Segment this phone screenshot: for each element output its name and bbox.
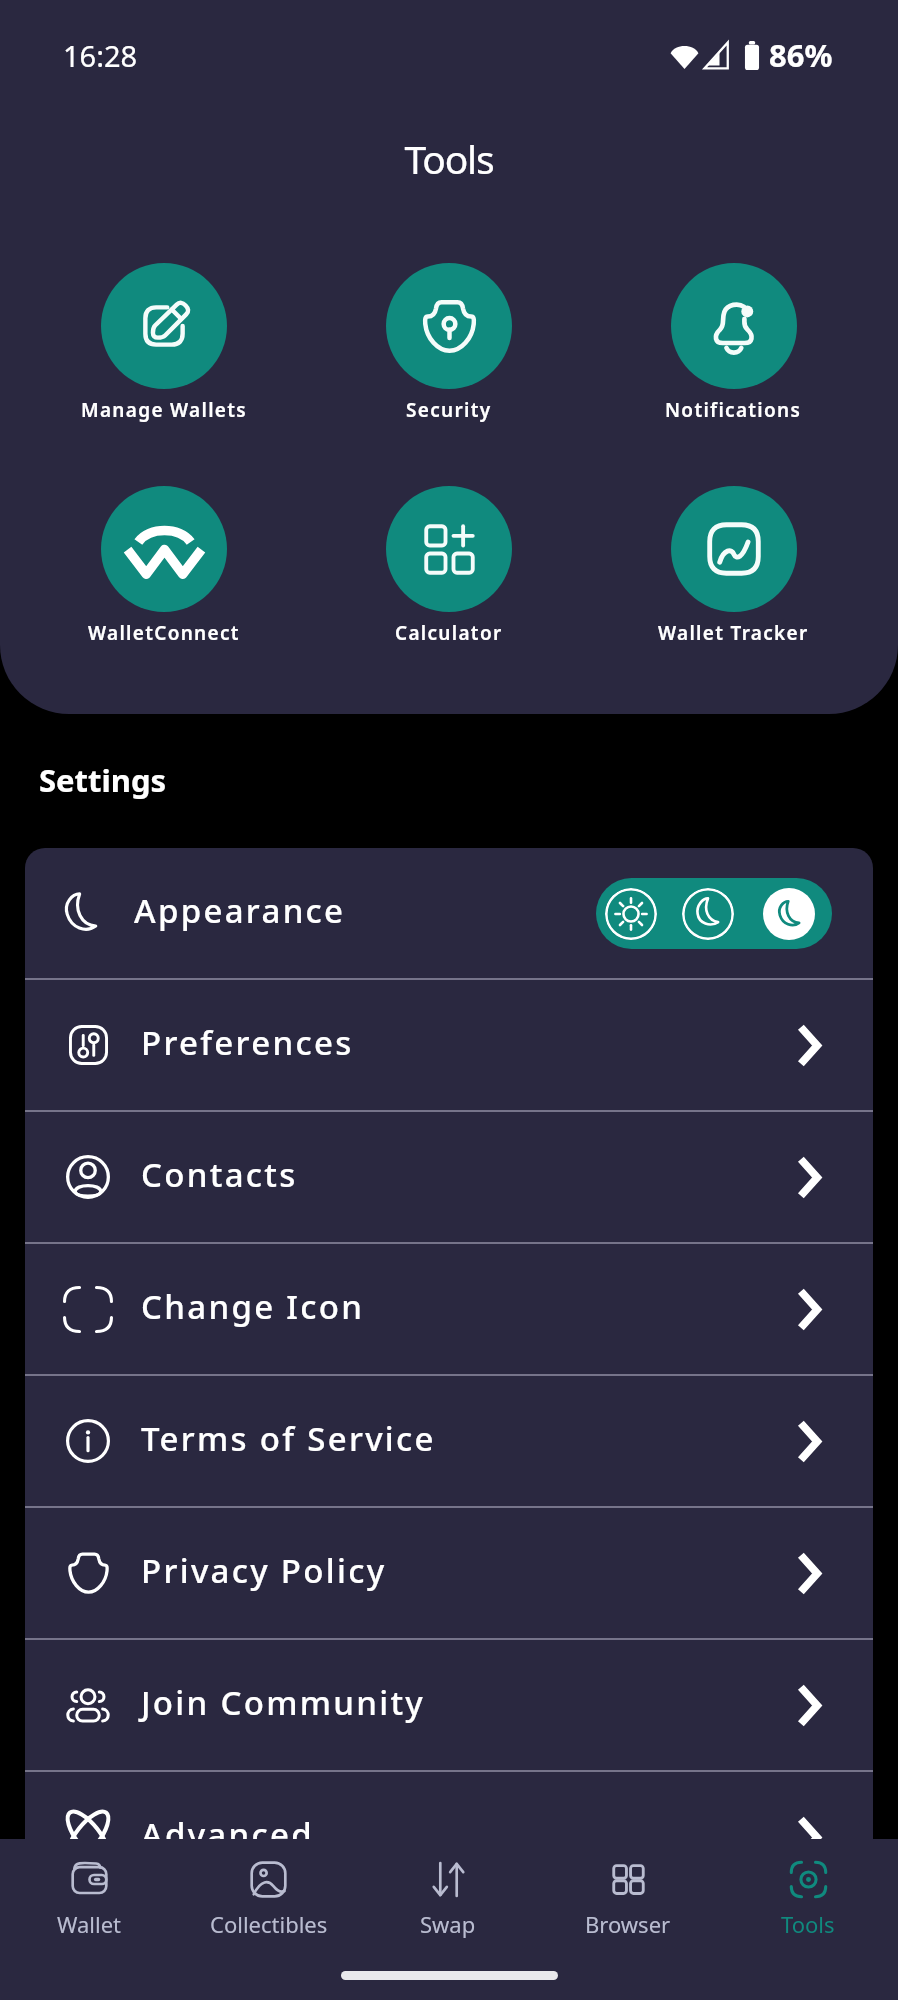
button[interactable]: Manage Wallets — [22, 263, 306, 423]
button[interactable]: Join Community — [25, 1640, 873, 1770]
staticText: Advanced — [141, 1812, 315, 1857]
staticText: Tools — [781, 1909, 835, 1939]
staticText: Calculator — [395, 620, 503, 646]
button[interactable]: Tools — [718, 1859, 898, 1939]
button[interactable]: Notifications — [591, 263, 876, 423]
staticText: WalletConnect — [88, 620, 240, 646]
staticText: Browser — [585, 1909, 671, 1939]
button[interactable]: Preferences — [25, 980, 873, 1110]
staticText: Security — [406, 397, 492, 423]
staticText: Join Community — [141, 1680, 426, 1725]
button[interactable]: Privacy Policy — [25, 1508, 873, 1638]
staticText: Privacy Policy — [141, 1548, 387, 1593]
button[interactable]: Dark theme — [763, 888, 815, 940]
button[interactable]: Security — [306, 263, 591, 423]
staticText: Preferences — [141, 1020, 354, 1065]
button[interactable]: System theme — [682, 888, 734, 940]
staticText: Wallet — [57, 1909, 122, 1939]
staticText: Wallet Tracker — [658, 620, 809, 646]
button[interactable]: Calculator — [306, 486, 591, 646]
button[interactable]: Contacts — [25, 1112, 873, 1242]
button[interactable]: Wallet Tracker — [591, 486, 876, 646]
button[interactable]: Appearance — [25, 848, 873, 978]
button[interactable]: Change Icon — [25, 1244, 873, 1374]
button[interactable]: Swap — [358, 1859, 538, 1939]
button[interactable]: Wallet — [0, 1859, 179, 1939]
button[interactable]: Light theme — [605, 888, 657, 940]
button[interactable]: Advanced — [25, 1772, 873, 1902]
staticText: Tools — [0, 132, 898, 185]
staticText: Terms of Service — [141, 1416, 436, 1461]
button[interactable]: Browser — [538, 1859, 718, 1939]
staticText: Manage Wallets — [81, 397, 247, 423]
button[interactable]: Terms of Service — [25, 1376, 873, 1506]
staticText: 16:28 — [63, 36, 138, 75]
staticText: Contacts — [141, 1152, 298, 1197]
button[interactable]: Collectibles — [179, 1859, 358, 1939]
staticText: Change Icon — [141, 1284, 365, 1329]
button[interactable]: WalletConnect — [22, 486, 306, 646]
staticText: Settings — [39, 759, 167, 801]
staticText: 86% — [769, 34, 833, 76]
staticText: Collectibles — [210, 1909, 328, 1939]
staticText: Swap — [420, 1909, 476, 1939]
staticText: Appearance — [134, 888, 346, 933]
staticText: Notifications — [665, 397, 802, 423]
